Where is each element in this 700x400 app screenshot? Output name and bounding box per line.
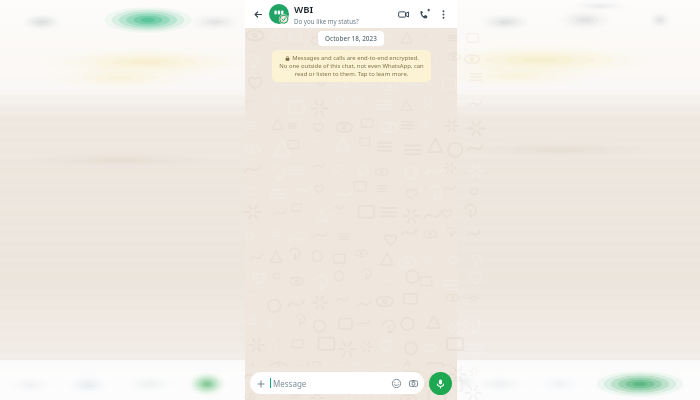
button[interactable]: More options — [437, 8, 450, 21]
button[interactable]: Video call — [396, 7, 410, 21]
staticText: WBI — [294, 3, 314, 16]
staticText: Messages and calls are end-to-end encryp… — [292, 54, 419, 62]
staticText: Message — [273, 378, 307, 389]
button[interactable]: Record voice message — [429, 372, 452, 395]
button[interactable]: October 18, 2023 — [318, 31, 384, 46]
button[interactable]: Back — [250, 6, 266, 22]
staticText: October 18, 2023 — [325, 34, 377, 43]
staticText: No one outside of this chat, not even Wh… — [279, 62, 424, 78]
button[interactable]: Voice call — [417, 7, 431, 21]
other: Camera — [408, 378, 419, 389]
other: Attach — [255, 378, 266, 389]
button[interactable]: WBI — [294, 3, 396, 25]
button[interactable]: Messages and calls are end-to-end encryp… — [272, 50, 431, 82]
button[interactable]: Attach — [250, 372, 424, 394]
button[interactable]: Profile photo — [269, 4, 289, 24]
other: Emoji — [391, 378, 402, 389]
staticText: Do you like my status? — [294, 17, 359, 25]
